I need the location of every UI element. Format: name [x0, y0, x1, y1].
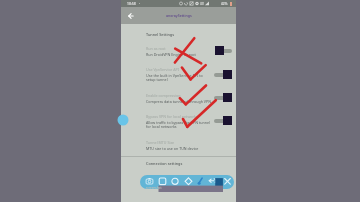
button[interactable]: Toggle: [212, 92, 232, 103]
button[interactable]: Bypass VPN for local networks: [121, 112, 236, 133]
staticText: Run DroidVPN Engine as root: [146, 52, 196, 57]
button[interactable]: Toggle: [212, 45, 232, 56]
staticText: Connection settings: [146, 161, 183, 166]
staticText: Compress data tunneled through VPN: [146, 99, 211, 104]
staticText: 18:58: [127, 1, 136, 6]
button[interactable]: Diamond: [183, 175, 195, 189]
staticText: Tunnel Settings: [146, 32, 175, 37]
staticText: Bypass VPN for local networks: [146, 114, 198, 119]
staticText: Tunnel MTU Size: [146, 140, 175, 145]
button[interactable]: Back: [125, 10, 137, 22]
staticText: MTU size to use on TUN device: [146, 146, 199, 151]
staticText: anxraySettings: [166, 13, 192, 18]
button[interactable]: Toggle: [212, 115, 232, 126]
button[interactable]: Screenshot: [144, 175, 156, 189]
staticText: Use VpnService API: [146, 67, 179, 72]
button[interactable]: Run as root: [121, 44, 236, 60]
staticText: Use the built in VpnService API to setup…: [146, 73, 203, 83]
button[interactable]: Rectangle: [157, 175, 169, 189]
staticText: screenshot: [146, 186, 162, 190]
button[interactable]: Undo: [207, 175, 219, 189]
button[interactable]: Toggle: [212, 69, 232, 80]
button[interactable]: Brush: [195, 175, 207, 189]
button[interactable]: Enable compression: [121, 91, 236, 107]
button[interactable]: Use VpnService API: [121, 65, 236, 86]
button[interactable]: Ellipse: [169, 175, 181, 189]
staticText: Run as root: [146, 46, 166, 51]
staticText: Enable compression: [146, 93, 181, 98]
staticText: Allow traffic to bypass the VPN tunnel f…: [146, 120, 210, 130]
staticText: 42%: [221, 2, 228, 6]
button[interactable]: Close: [222, 175, 234, 189]
button[interactable]: Tunnel MTU Size: [121, 138, 236, 154]
